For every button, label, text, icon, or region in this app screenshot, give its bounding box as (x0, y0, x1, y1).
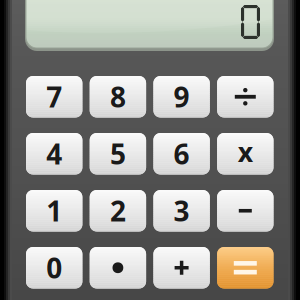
button[interactable]: 4 (0, 0, 56, 41)
button[interactable]: 6 (0, 0, 56, 41)
staticText: 0 (46, 249, 62, 286)
button[interactable]: 9 (0, 0, 56, 41)
staticText: 1 (46, 192, 62, 229)
button[interactable]: Plus (0, 0, 56, 41)
staticText: 3 (174, 192, 190, 229)
button[interactable]: 1 (0, 0, 56, 41)
staticText: 5 (110, 135, 126, 172)
staticText: 4 (46, 135, 62, 172)
staticText: 9 (174, 78, 190, 115)
staticText: x (238, 134, 253, 169)
button[interactable]: 3 (0, 0, 56, 41)
button[interactable]: 7 (0, 0, 56, 41)
staticText: 2 (110, 192, 126, 229)
staticText: 6 (174, 135, 190, 172)
button[interactable]: Decimal point (0, 0, 56, 41)
button[interactable]: Multiply (0, 0, 56, 41)
button[interactable]: 0 (0, 0, 56, 41)
staticText: 8 (110, 78, 126, 115)
button[interactable]: 5 (0, 0, 56, 41)
button[interactable]: Minus (0, 0, 56, 41)
button[interactable]: 2 (0, 0, 56, 41)
button[interactable]: Equals (0, 0, 56, 41)
button[interactable]: Divide (0, 0, 56, 41)
button[interactable]: 8 (0, 0, 56, 41)
staticText: 7 (46, 78, 62, 115)
